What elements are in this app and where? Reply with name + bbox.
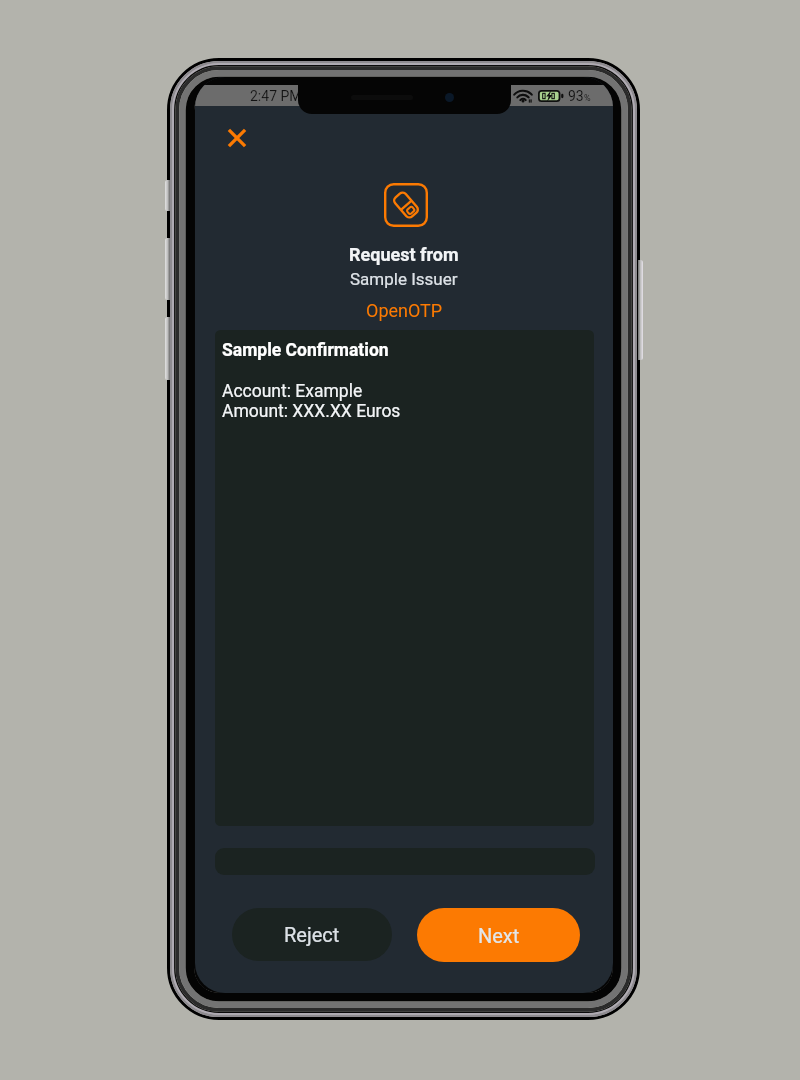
button[interactable]: Close xyxy=(221,122,253,154)
staticText: Request from xyxy=(349,244,459,265)
button[interactable]: Reject xyxy=(232,908,392,961)
staticText: Next xyxy=(478,924,520,947)
staticText: % xyxy=(584,93,591,104)
staticText: 2:47 PM xyxy=(250,88,302,104)
staticText: Sample Confirmation xyxy=(222,340,389,361)
staticText: Account: Example Amount: XXX.XX Euros xyxy=(222,381,401,421)
staticText: OpenOTP xyxy=(366,300,443,321)
staticText: Sample Issuer xyxy=(350,269,458,289)
staticText: Reject xyxy=(284,923,340,946)
button[interactable]: Next xyxy=(417,908,580,962)
staticText: 93 xyxy=(568,88,584,104)
